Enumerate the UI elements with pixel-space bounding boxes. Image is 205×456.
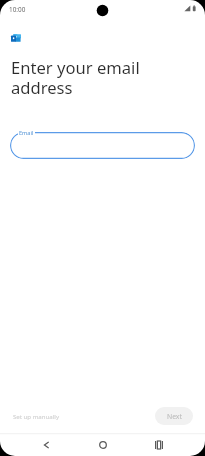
button[interactable]: Recent apps	[147, 433, 171, 456]
staticText: 10:00	[9, 5, 26, 14]
staticText: Set up manually	[13, 412, 59, 420]
button[interactable]: Next	[155, 407, 193, 425]
button[interactable]: Set up manually	[6, 405, 66, 427]
staticText: Next	[167, 412, 182, 421]
staticText: Email	[19, 129, 34, 137]
button[interactable]	[10, 132, 195, 159]
button[interactable]: Back	[34, 433, 58, 456]
button[interactable]: Home	[91, 433, 115, 456]
staticText: Enter your email address	[11, 56, 140, 99]
